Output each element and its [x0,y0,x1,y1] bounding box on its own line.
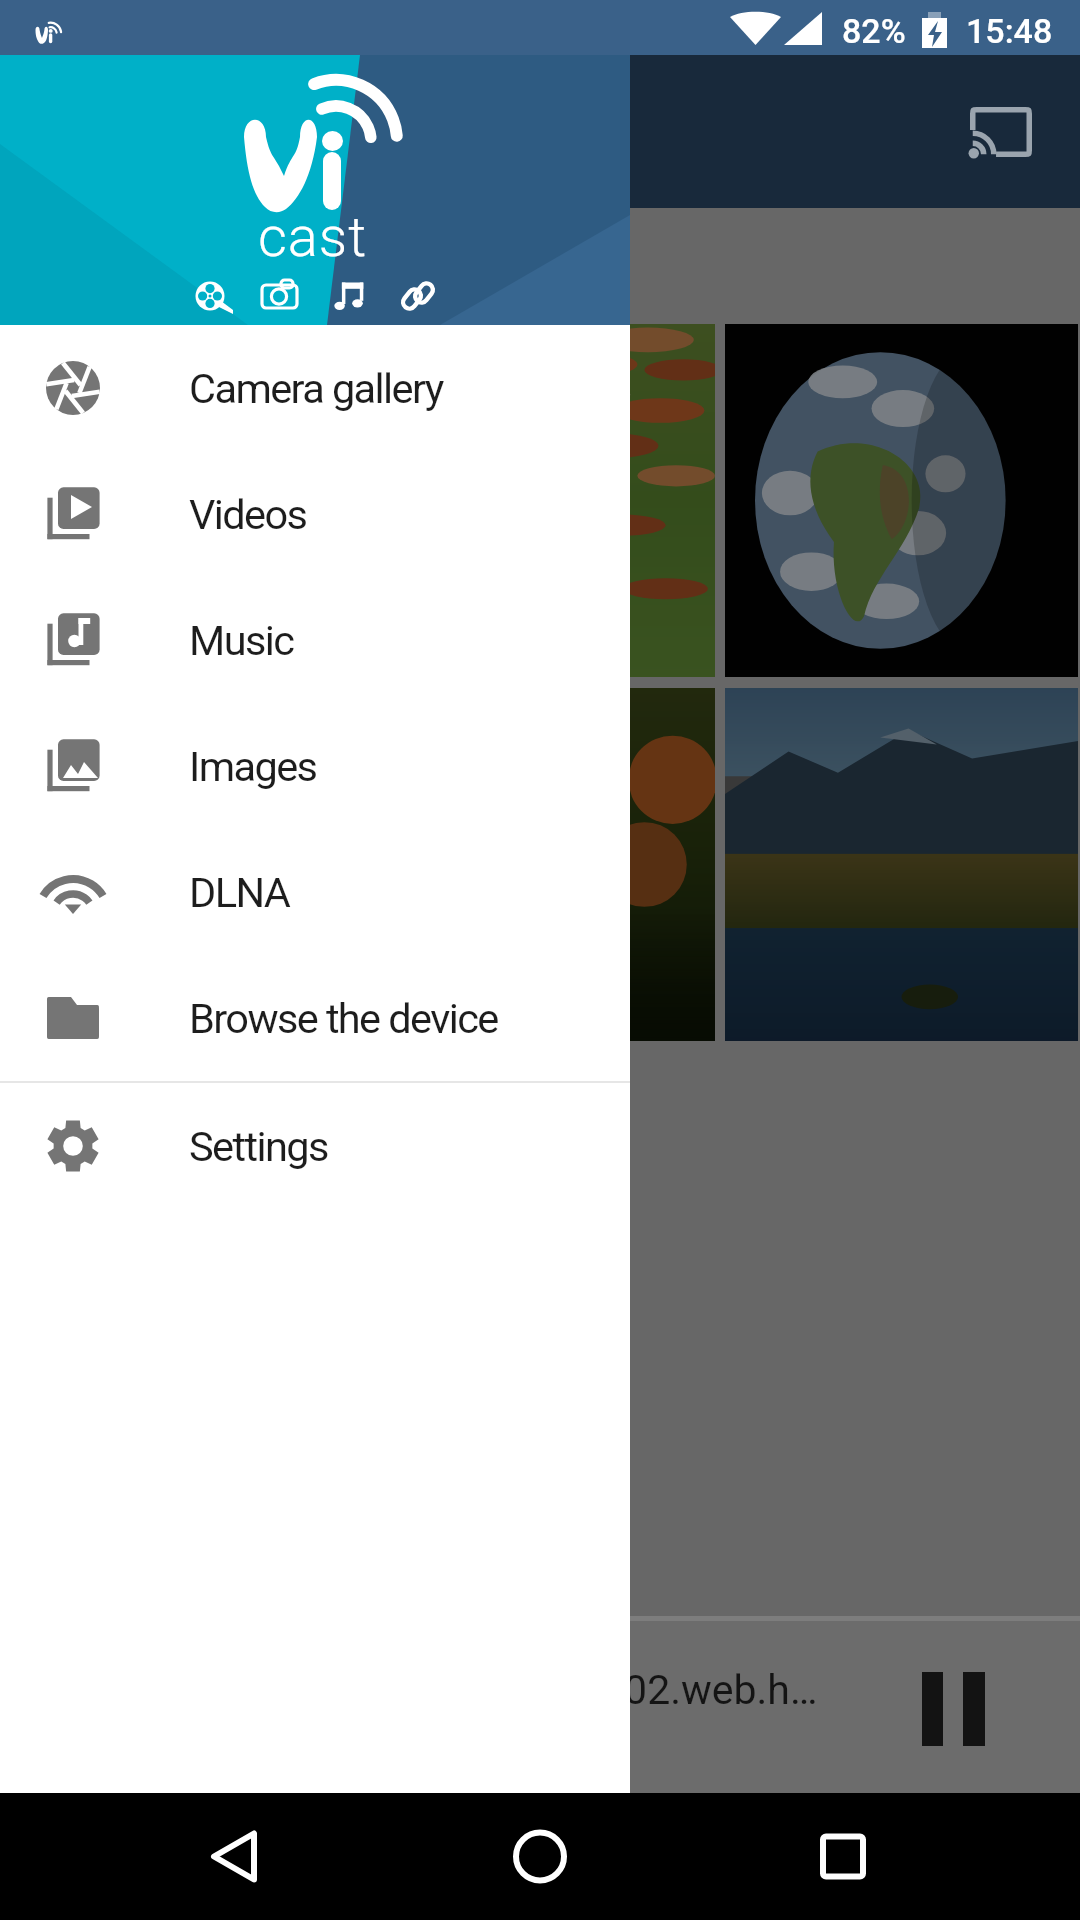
button[interactable]: Camera gallery [0,325,630,451]
button[interactable]: Back [171,1793,297,1920]
staticText: 15:48 [966,11,1053,51]
button[interactable]: Pause [883,1640,1023,1778]
staticText: Settings [189,1122,328,1171]
button[interactable]: Recent apps [780,1793,906,1920]
button[interactable]: Photo [362,688,715,1041]
button[interactable]: Photo [362,324,715,677]
button[interactable]: Videos [0,451,630,577]
button[interactable]: Photo [0,324,353,677]
staticText: Images [189,742,317,791]
button[interactable]: Photo [725,688,1078,1041]
button[interactable]: Settings [0,1083,630,1209]
button[interactable]: Home [477,1793,603,1920]
staticText: 3502.web.h… [578,1666,818,1714]
button[interactable]: Videos filter [176,263,242,325]
button[interactable]: Music filter [317,263,383,325]
staticText: Camera gallery [189,364,443,413]
button[interactable]: Images [0,703,630,829]
staticText: cast [258,204,368,270]
button[interactable]: Photo [0,688,353,1041]
staticText: Music [189,616,294,665]
button[interactable]: Camera filter [246,263,312,325]
button[interactable]: Cast [941,78,1061,186]
staticText: 82% [842,11,906,51]
button[interactable]: Links filter [385,263,451,325]
button[interactable]: Photo [725,324,1078,677]
staticText: DLNA [189,868,290,917]
staticText: Videos [189,490,307,539]
button[interactable]: DLNA [0,829,630,955]
button[interactable]: Browse the device [0,955,630,1081]
staticText: Browse the device [189,994,498,1043]
button[interactable]: Music [0,577,630,703]
